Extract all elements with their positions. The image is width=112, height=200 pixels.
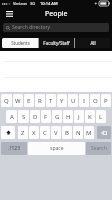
button[interactable]: W (13, 94, 23, 107)
staticText: T (49, 97, 53, 105)
button[interactable]: Faculty/Staff (39, 38, 74, 48)
staticText: U (71, 97, 76, 105)
staticText: M (86, 129, 92, 137)
staticText: .?123 (8, 145, 21, 152)
button[interactable]: L (96, 110, 106, 123)
button[interactable]: O (90, 94, 100, 107)
staticText: Search directory (12, 24, 51, 31)
staticText: A (10, 113, 14, 121)
staticText: V (54, 129, 58, 137)
button[interactable]: A (6, 110, 17, 123)
staticText: F (44, 113, 48, 121)
button[interactable]: J (74, 110, 84, 123)
button[interactable]: Z (18, 126, 28, 139)
button[interactable]: X (29, 126, 39, 139)
staticText: W (15, 97, 21, 105)
button[interactable]: S (18, 110, 29, 123)
staticText: Students (11, 40, 30, 46)
button[interactable]: C (40, 126, 50, 139)
button[interactable]: Q (1, 94, 12, 107)
staticText: Verizon (13, 1, 28, 6)
button[interactable]: All (75, 38, 110, 48)
staticText: 10:14 AM (40, 1, 58, 6)
staticText: D (33, 113, 38, 121)
staticText: B (65, 129, 69, 137)
button[interactable]: T (46, 94, 56, 107)
staticText: space (50, 145, 64, 152)
staticText: H (66, 113, 71, 121)
button[interactable]: P (101, 94, 111, 107)
button[interactable]: K (85, 110, 95, 123)
button[interactable]: Backspace (97, 126, 111, 139)
staticText: Y (60, 97, 64, 105)
staticText: X (32, 129, 36, 137)
button[interactable]: U (68, 94, 78, 107)
button[interactable]: E (24, 94, 34, 107)
staticText: People (45, 9, 68, 19)
button[interactable]: H (63, 110, 73, 123)
button[interactable]: D (30, 110, 40, 123)
staticText: E (27, 97, 31, 105)
button[interactable]: Search directory (3, 23, 109, 32)
button[interactable]: M (84, 126, 94, 139)
button[interactable]: Students (2, 38, 38, 48)
staticText: All (90, 40, 96, 46)
button[interactable]: Y (57, 94, 67, 107)
staticText: Q (4, 97, 9, 105)
button[interactable]: I (79, 94, 89, 107)
button[interactable]: Menu (3, 8, 15, 20)
button[interactable]: .?123 (1, 142, 27, 155)
button[interactable]: space (28, 142, 85, 155)
button[interactable]: N (73, 126, 83, 139)
staticText: Faculty/Staff (43, 40, 70, 46)
staticText: N (76, 129, 81, 137)
staticText: Z (21, 129, 25, 137)
button[interactable]: B (62, 126, 72, 139)
staticText: P (104, 97, 108, 105)
staticText: Search (91, 145, 107, 152)
staticText: K (88, 113, 92, 121)
button[interactable]: R (35, 94, 45, 107)
staticText: G (55, 113, 60, 121)
staticText: R (38, 97, 42, 105)
button[interactable]: Search (86, 142, 111, 155)
staticText: S (22, 113, 26, 121)
staticText: J (78, 113, 80, 121)
button[interactable]: G (52, 110, 62, 123)
button[interactable]: F (41, 110, 51, 123)
staticText: I (83, 97, 86, 105)
staticText: 3G (30, 1, 36, 6)
staticText: L (99, 113, 103, 121)
button[interactable]: V (51, 126, 61, 139)
staticText: C (43, 129, 47, 137)
button[interactable]: Shift (1, 126, 15, 139)
staticText: O (93, 97, 98, 105)
